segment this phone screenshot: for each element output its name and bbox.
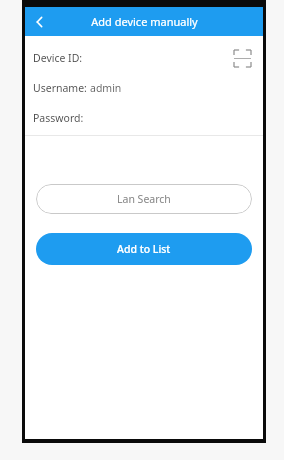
button[interactable]: Back xyxy=(25,7,55,36)
staticText: admin xyxy=(90,81,122,95)
button[interactable]: Add to List xyxy=(36,233,252,265)
staticText: Lan Search xyxy=(117,192,171,206)
staticText: Device ID: xyxy=(33,51,83,65)
button[interactable]: Password: xyxy=(25,110,263,126)
staticText: Username: xyxy=(33,81,90,95)
button[interactable]: Username: xyxy=(25,80,263,96)
button[interactable]: Lan Search xyxy=(36,184,252,214)
staticText: Add device manually xyxy=(91,14,198,29)
staticText: Add to List xyxy=(117,242,171,256)
staticText: Password: xyxy=(33,111,84,125)
button[interactable]: Scan QR code xyxy=(231,47,253,69)
